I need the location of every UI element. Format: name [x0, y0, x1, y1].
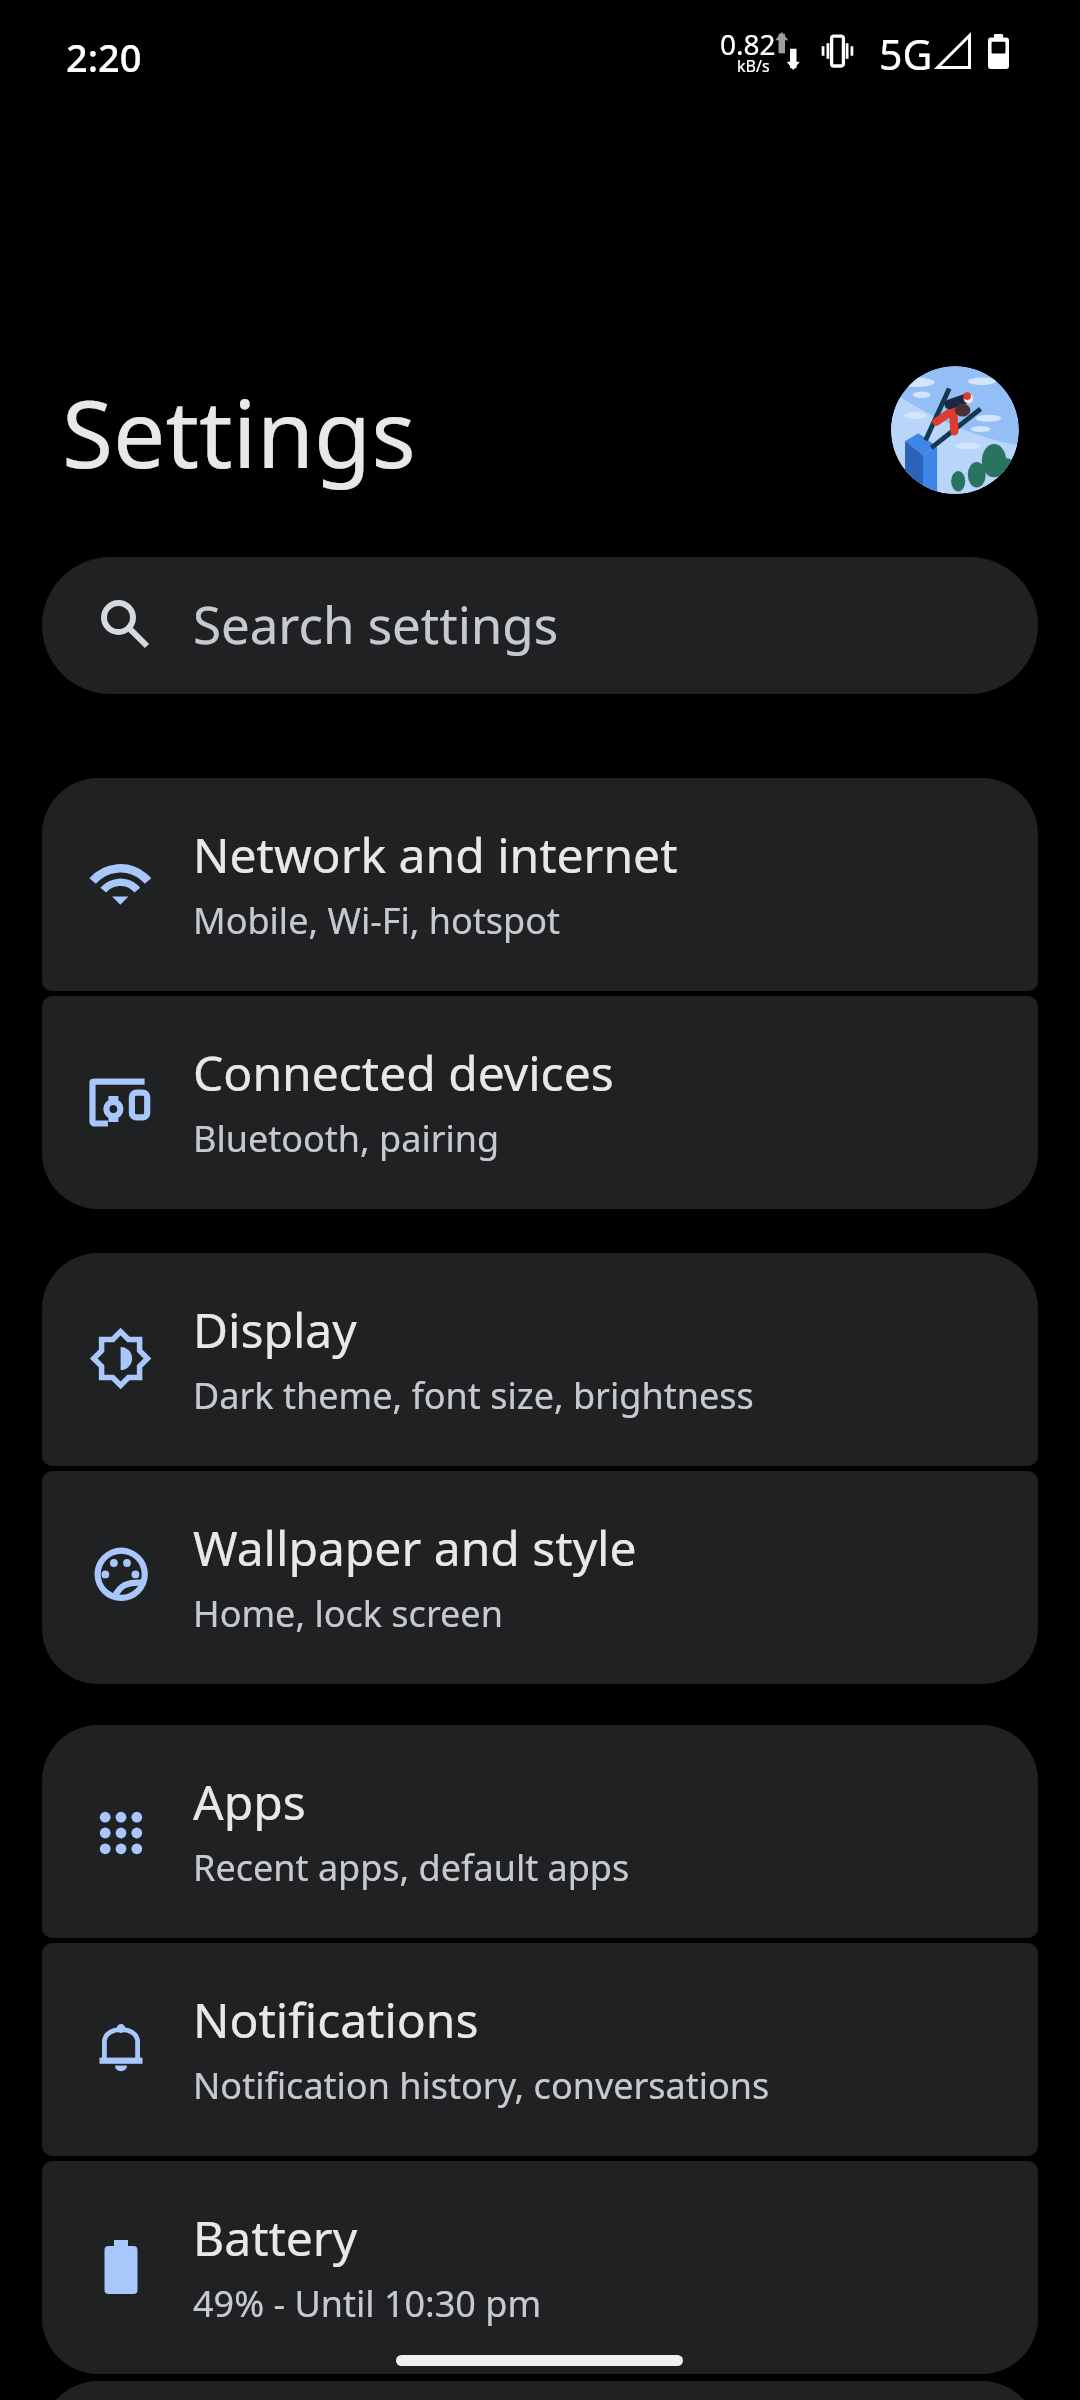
staticText: Notification history, conversations — [193, 2061, 770, 2110]
button[interactable]: Account avatar — [891, 366, 1019, 494]
staticText: Notifications — [193, 1987, 479, 2052]
staticText: Mobile, Wi-Fi, hotspot — [193, 896, 560, 945]
staticText: 5G — [879, 26, 933, 82]
staticText: Wallpaper and style — [193, 1515, 637, 1580]
button[interactable]: Storage — [42, 2381, 1038, 2400]
staticText: Display — [193, 1297, 357, 1362]
staticText: 2:20 — [66, 31, 142, 83]
button[interactable]: Search settings — [42, 557, 1038, 694]
button[interactable]: Display — [42, 1253, 1038, 1466]
staticText: Bluetooth, pairing — [193, 1114, 500, 1163]
staticText: Search settings — [193, 589, 559, 658]
button[interactable]: Battery — [42, 2161, 1038, 2374]
staticText: Battery — [193, 2205, 358, 2270]
staticText: Home, lock screen — [193, 1589, 503, 1638]
staticText: Network and internet — [193, 822, 678, 887]
staticText: 49% - Until 10:30 pm — [193, 2279, 542, 2328]
staticText: Recent apps, default apps — [193, 1843, 630, 1892]
button[interactable]: Wallpaper and style — [42, 1471, 1038, 1684]
button[interactable]: Notifications — [42, 1943, 1038, 2156]
button[interactable]: Network and internet — [42, 778, 1038, 991]
staticText: Dark theme, font size, brightness — [193, 1371, 754, 1420]
staticText: kB/s — [737, 55, 770, 77]
staticText: 0.82 — [720, 25, 776, 63]
button[interactable]: Connected devices — [42, 996, 1038, 1209]
staticText: Apps — [193, 1769, 306, 1834]
staticText: Connected devices — [193, 1040, 614, 1105]
button[interactable]: Apps — [42, 1725, 1038, 1938]
staticText: Settings — [62, 369, 416, 496]
